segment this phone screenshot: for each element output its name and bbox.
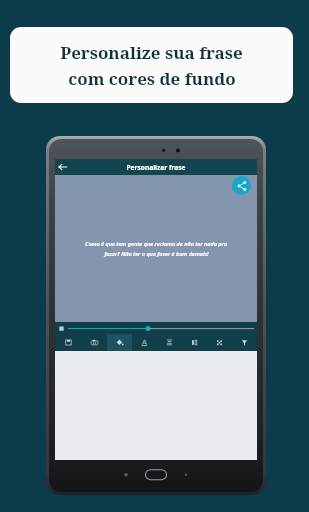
button[interactable]: Share (232, 176, 251, 195)
staticText: fazer? Não ter o que fazer é bom demais! (104, 250, 209, 257)
button[interactable]: Text style (132, 334, 157, 351)
button[interactable]: Filter (232, 334, 257, 351)
staticText: Personalize sua frase (60, 41, 243, 64)
button[interactable]: Background color (107, 334, 132, 351)
staticText: Personalizar frase (126, 163, 186, 172)
staticText: Como é que tem gente que reclama de não … (85, 240, 227, 247)
button[interactable]: Alignment (157, 334, 182, 351)
button[interactable]: Save (55, 334, 81, 351)
staticText: com cores de fundo (68, 67, 236, 90)
button[interactable]: Camera (81, 334, 107, 351)
button[interactable]: Pattern (207, 334, 232, 351)
button[interactable]: Contrast (182, 334, 207, 351)
button[interactable]: Back (55, 159, 71, 175)
